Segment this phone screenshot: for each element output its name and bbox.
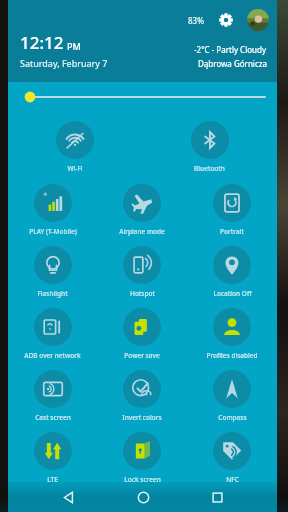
button[interactable]: Compass	[187, 367, 277, 425]
staticText: 83%	[188, 15, 204, 26]
button[interactable]: Settings	[216, 10, 236, 30]
button[interactable]: Hotspot	[97, 243, 187, 301]
staticText: -2°C - Partly Cloudy	[194, 44, 267, 55]
staticText: ADB over network	[24, 351, 81, 360]
button[interactable]: Home	[128, 482, 158, 512]
staticText: Hotspot	[130, 289, 155, 298]
button[interactable]: Airplane mode	[97, 181, 187, 239]
button[interactable]: Invert colors	[97, 367, 187, 425]
staticText: Profiles disabled	[206, 351, 258, 360]
button[interactable]: Power save	[97, 305, 187, 363]
button[interactable]: Profiles disabled	[187, 305, 277, 363]
staticText: Power save	[124, 351, 160, 360]
staticText: Location Off	[213, 289, 252, 298]
staticText: LTE	[47, 475, 58, 484]
button[interactable]: Location Off	[187, 243, 277, 301]
button[interactable]: User profile	[247, 9, 269, 31]
button[interactable]: Cast screen	[8, 367, 97, 425]
staticText: Compass	[218, 413, 247, 422]
staticText: Airplane mode	[119, 227, 165, 236]
button[interactable]: PLAY (T-Mobile)	[8, 181, 97, 239]
staticText: 12:12	[20, 31, 64, 54]
staticText: Invert colors	[122, 413, 162, 422]
staticText: Bluetooth	[194, 164, 225, 173]
staticText: Saturday, February 7	[20, 57, 108, 69]
staticText: Dąbrowa Górnicza	[198, 58, 267, 69]
button[interactable]: Back	[53, 482, 83, 512]
staticText: Flashlight	[37, 289, 68, 298]
button[interactable]: ADB over network	[8, 305, 97, 363]
staticText: PLAY (T-Mobile)	[29, 227, 77, 236]
staticText: Lock screen	[124, 475, 161, 484]
staticText: PM	[67, 40, 81, 52]
staticText: Wi-Fi	[67, 164, 83, 173]
staticText: Portrait	[220, 227, 244, 236]
staticText: Cast screen	[35, 413, 71, 422]
button[interactable]: NFC	[187, 429, 277, 487]
button[interactable]: Bluetooth	[142, 118, 277, 176]
button[interactable]: LTE	[8, 429, 97, 487]
button[interactable]: Flashlight	[8, 243, 97, 301]
button[interactable]: Portrait	[187, 181, 277, 239]
button[interactable]: Wi-Fi	[8, 118, 142, 176]
staticText: NFC	[226, 475, 239, 484]
button[interactable]: Recent apps	[202, 482, 232, 512]
button[interactable]: Brightness	[8, 88, 277, 106]
button[interactable]: Lock screen	[97, 429, 187, 487]
